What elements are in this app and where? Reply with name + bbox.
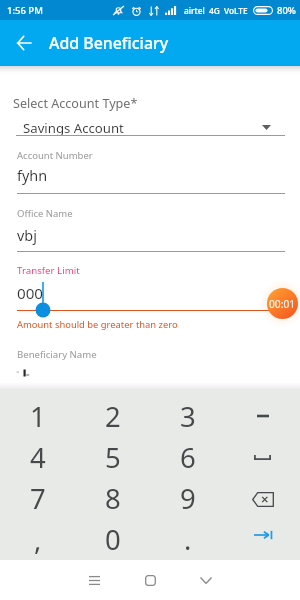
button[interactable]: Back xyxy=(11,30,37,56)
button[interactable]: 4 xyxy=(0,437,75,478)
button[interactable]: , xyxy=(0,519,75,560)
button[interactable]: Savings Account xyxy=(0,117,300,137)
staticText: 4G xyxy=(209,5,220,16)
staticText: 000 xyxy=(17,283,44,304)
staticText: 5 xyxy=(105,439,121,476)
staticText: Savings Account xyxy=(23,119,124,137)
button[interactable]: 3 xyxy=(150,395,225,437)
staticText: vbj xyxy=(17,226,37,246)
button[interactable]: Delete xyxy=(225,478,300,519)
staticText: 9 xyxy=(180,480,196,517)
button[interactable]: 7 xyxy=(0,478,75,519)
staticText: Beneficiary Name xyxy=(17,348,97,361)
button[interactable] xyxy=(225,437,300,478)
button[interactable]: Home xyxy=(122,560,178,600)
staticText: Office Name xyxy=(17,207,73,220)
button[interactable]: 1 xyxy=(0,395,75,437)
staticText: Account Number xyxy=(17,149,93,162)
button[interactable]: 00:01 xyxy=(267,288,298,319)
button[interactable]: . xyxy=(150,519,225,560)
button[interactable]: Delete xyxy=(248,488,278,510)
button[interactable]: 2 xyxy=(75,395,150,437)
staticText: . xyxy=(184,521,192,558)
button[interactable]: 0 xyxy=(75,519,150,560)
staticText: fyhn xyxy=(17,166,48,186)
staticText: 1 xyxy=(30,398,46,435)
staticText: VoLTE xyxy=(224,5,248,16)
staticText: 1:56 PM xyxy=(7,4,43,17)
button[interactable]: Recent apps xyxy=(66,560,122,600)
button[interactable] xyxy=(225,395,300,437)
staticText: Add Beneficiary xyxy=(49,32,169,54)
button[interactable]: 6 xyxy=(150,437,225,478)
staticText: 0 xyxy=(105,521,121,558)
staticText: Transfer Limit xyxy=(17,264,80,277)
button[interactable]: 8 xyxy=(75,478,150,519)
staticText: 6 xyxy=(180,439,196,476)
staticText: 8 xyxy=(105,480,121,517)
staticText: 7 xyxy=(30,480,46,517)
staticText: airtel xyxy=(184,5,205,16)
staticText: , xyxy=(34,521,42,558)
button[interactable]: 5 xyxy=(75,437,150,478)
button[interactable]: Next field xyxy=(225,519,300,560)
button[interactable]: 9 xyxy=(150,478,225,519)
staticText: 2 xyxy=(105,398,121,435)
button[interactable]: Back xyxy=(178,560,234,600)
staticText: 4 xyxy=(30,439,46,476)
staticText: Select Account Type* xyxy=(13,95,138,112)
staticText: 80% xyxy=(277,4,296,17)
button[interactable]: Next field xyxy=(248,524,278,546)
staticText: Amount should be greater than zero xyxy=(17,318,178,331)
staticText: 3 xyxy=(180,398,196,435)
staticText: 00:01 xyxy=(269,297,296,311)
